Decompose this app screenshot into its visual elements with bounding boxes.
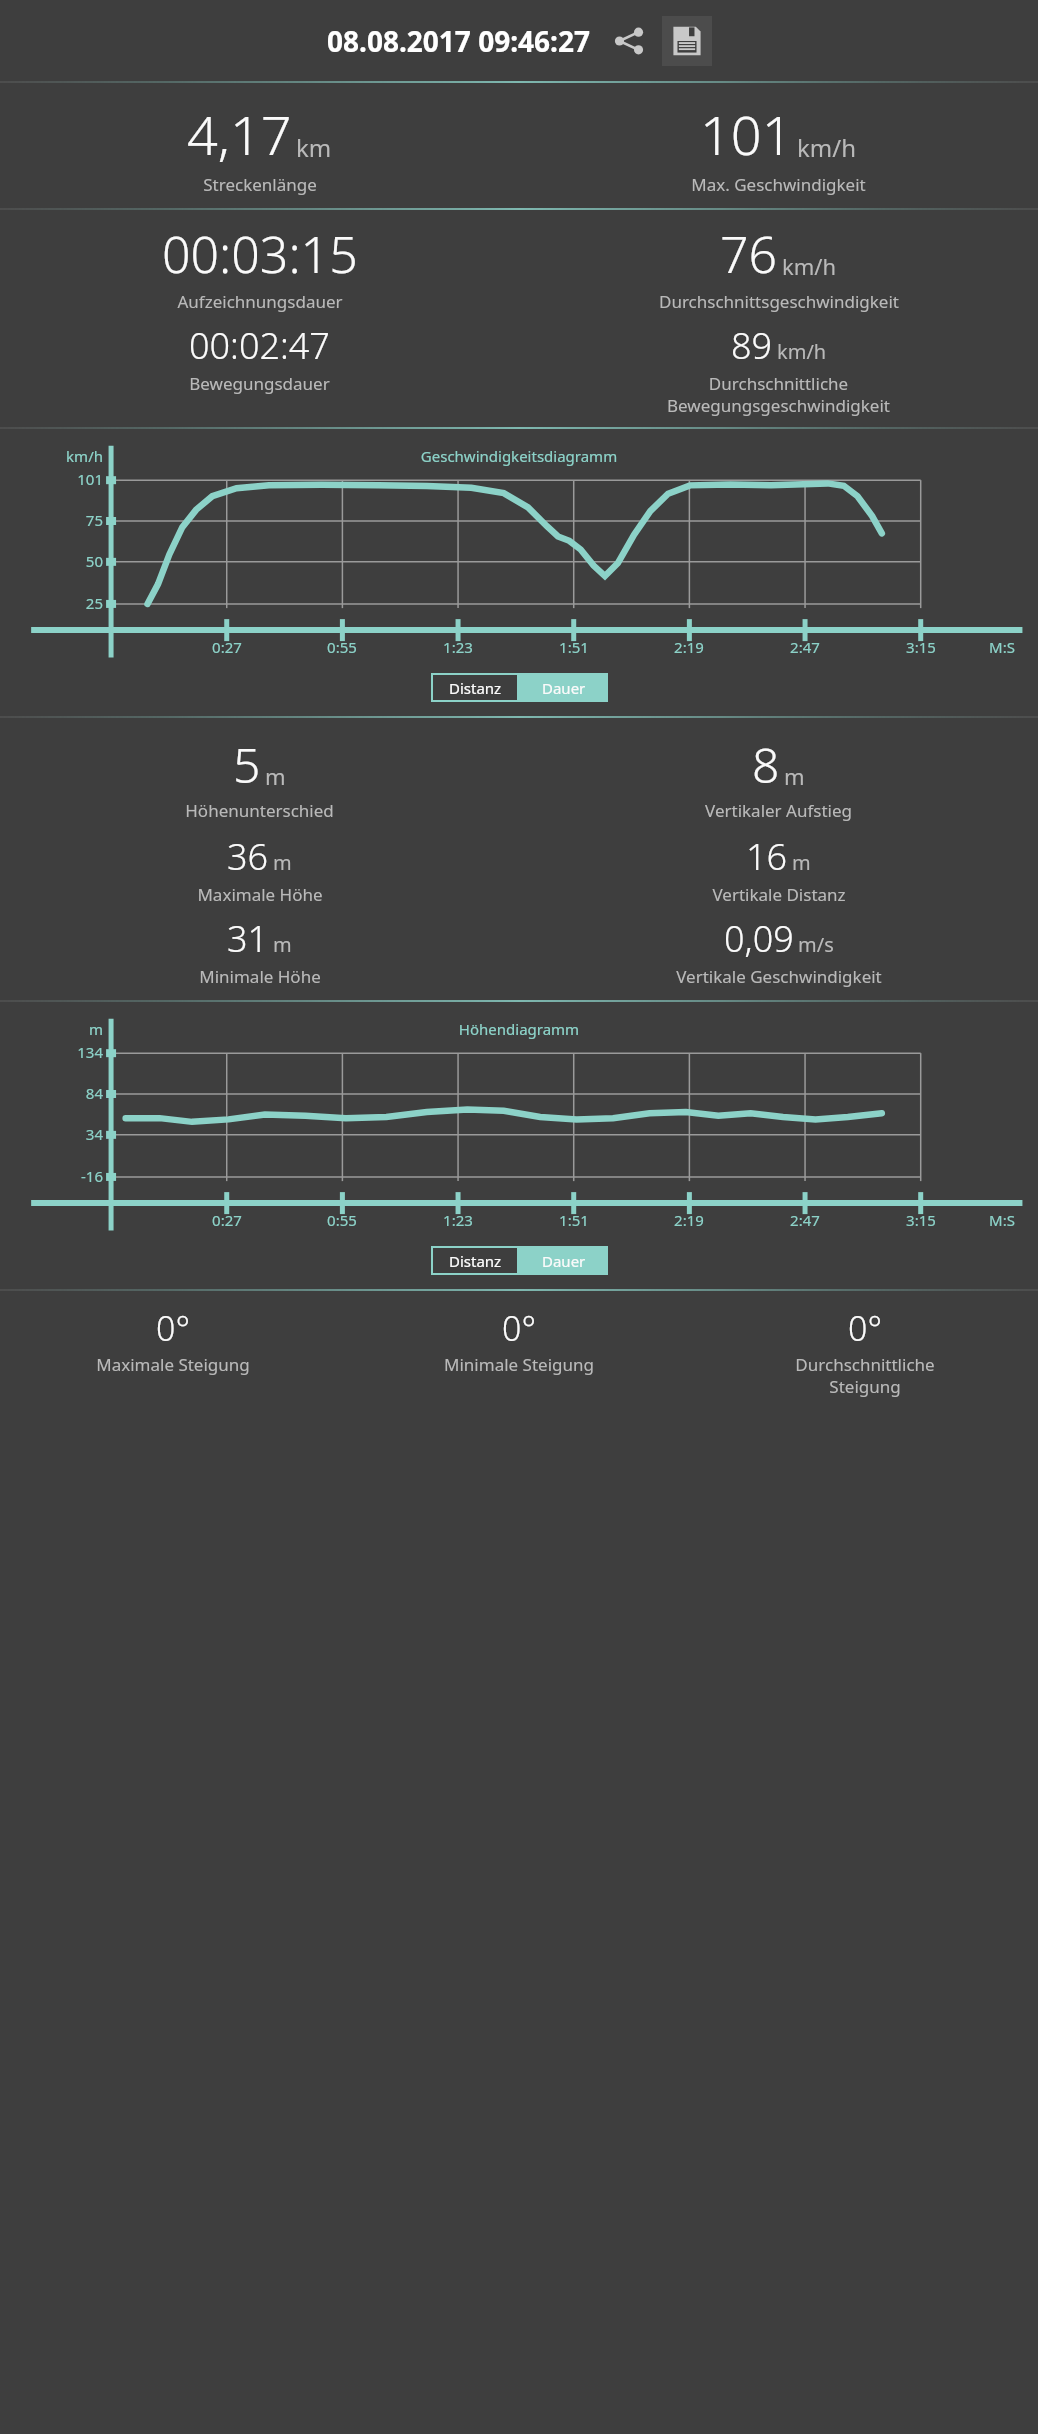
staticText: Distanz — [449, 1251, 502, 1271]
staticText: km — [296, 131, 332, 164]
staticText: 2:47 — [779, 637, 831, 657]
staticText: -16 — [55, 1166, 103, 1186]
staticText: Höhendiagramm — [0, 1019, 1038, 1039]
staticText: 25 — [59, 593, 103, 613]
button[interactable]: Dauer — [519, 1246, 608, 1275]
button[interactable]: Distanz — [431, 1246, 608, 1275]
button[interactable]: 16 — [519, 832, 1038, 906]
staticText: 1:23 — [432, 1210, 484, 1230]
staticText: Minimale Höhe — [199, 965, 321, 988]
staticText: Durchschnittliche Bewegungsgeschwindigke… — [667, 372, 890, 417]
button[interactable]: Distanz — [431, 673, 608, 702]
staticText: Bewegungsdauer — [189, 372, 330, 395]
staticText: 89 — [731, 321, 773, 370]
staticText: Durchschnittsgeschwindigkeit — [659, 290, 899, 313]
button[interactable]: 8 — [519, 732, 1038, 822]
staticText: 4,17 — [187, 97, 292, 171]
staticText: km/h — [797, 131, 857, 164]
staticText: 84 — [55, 1083, 103, 1103]
staticText: m — [265, 761, 286, 791]
staticText: 5 — [233, 732, 261, 797]
staticText: Maximale Steigung — [96, 1353, 250, 1376]
button[interactable]: 0° — [0, 1305, 346, 1376]
button[interactable]: 4,17 — [0, 97, 519, 196]
button[interactable]: 00:02:47 — [0, 321, 519, 395]
staticText: 134 — [55, 1042, 103, 1062]
staticText: 16 — [746, 832, 788, 881]
staticText: 101 — [700, 97, 793, 171]
button[interactable]: 0° — [346, 1305, 692, 1376]
staticText: M:S — [976, 637, 1028, 657]
staticText: 3:15 — [895, 1210, 947, 1230]
staticText: 8 — [752, 732, 780, 797]
staticText: 08.08.2017 09:46:27 — [327, 22, 590, 60]
button[interactable]: Share — [606, 18, 652, 64]
button[interactable]: Save — [662, 16, 712, 66]
staticText: m — [273, 849, 292, 876]
staticText: m — [784, 761, 805, 791]
staticText: 34 — [55, 1124, 103, 1144]
button[interactable]: Distanz — [433, 675, 517, 700]
staticText: Minimale Steigung — [444, 1353, 594, 1376]
staticText: Max. Geschwindigkeit — [691, 173, 866, 196]
staticText: m/s — [798, 931, 834, 958]
staticText: 0,09 — [724, 914, 794, 963]
button[interactable]: Dauer — [519, 673, 608, 702]
staticText: km/h — [777, 338, 827, 365]
staticText: 0:55 — [316, 1210, 368, 1230]
staticText: Vertikale Geschwindigkeit — [676, 965, 882, 988]
staticText: 0:27 — [201, 1210, 253, 1230]
staticText: Höhenunterschied — [185, 799, 334, 822]
staticText: 0° — [848, 1305, 882, 1351]
staticText: Streckenlänge — [203, 173, 317, 196]
staticText: 1:23 — [432, 637, 484, 657]
button[interactable]: 31 — [0, 914, 519, 988]
button[interactable]: 5 — [0, 732, 519, 822]
staticText: 2:47 — [779, 1210, 831, 1230]
staticText: 2:19 — [663, 637, 715, 657]
staticText: 0° — [502, 1305, 536, 1351]
button[interactable]: Distanz — [433, 1248, 517, 1273]
staticText: 1:51 — [548, 1210, 600, 1230]
staticText: 76 — [720, 220, 778, 288]
staticText: m — [273, 931, 292, 958]
staticText: Distanz — [449, 678, 502, 698]
button[interactable]: 76 — [519, 220, 1038, 313]
staticText: Dauer — [542, 678, 586, 698]
staticText: Vertikaler Aufstieg — [705, 799, 852, 822]
staticText: 00:02:47 — [189, 321, 330, 370]
staticText: km/h — [59, 446, 103, 466]
staticText: 3:15 — [895, 637, 947, 657]
staticText: Vertikale Distanz — [712, 883, 846, 906]
staticText: m — [55, 1019, 103, 1039]
staticText: 1:51 — [548, 637, 600, 657]
button[interactable]: 101 — [519, 97, 1038, 196]
button[interactable]: 36 — [0, 832, 519, 906]
staticText: Geschwindigkeitsdiagramm — [0, 446, 1038, 466]
staticText: 0° — [156, 1305, 190, 1351]
staticText: 0:55 — [316, 637, 368, 657]
button[interactable]: 89 — [519, 321, 1038, 417]
staticText: km/h — [782, 251, 837, 281]
staticText: 101 — [59, 469, 103, 489]
staticText: Durchschnittliche Steigung — [795, 1353, 935, 1398]
staticText: M:S — [976, 1210, 1028, 1230]
staticText: 31 — [227, 914, 269, 963]
staticText: 00:03:15 — [162, 220, 358, 288]
staticText: 0:27 — [201, 637, 253, 657]
staticText: 36 — [227, 832, 269, 881]
staticText: m — [792, 849, 811, 876]
staticText: 2:19 — [663, 1210, 715, 1230]
button[interactable]: 0,09 — [519, 914, 1038, 988]
staticText: Maximale Höhe — [197, 883, 323, 906]
button[interactable]: 00:03:15 — [0, 220, 519, 313]
staticText: Aufzeichnungsdauer — [177, 290, 343, 313]
staticText: 50 — [59, 551, 103, 571]
staticText: Dauer — [542, 1251, 586, 1271]
staticText: 75 — [59, 510, 103, 530]
button[interactable]: 0° — [692, 1305, 1038, 1398]
